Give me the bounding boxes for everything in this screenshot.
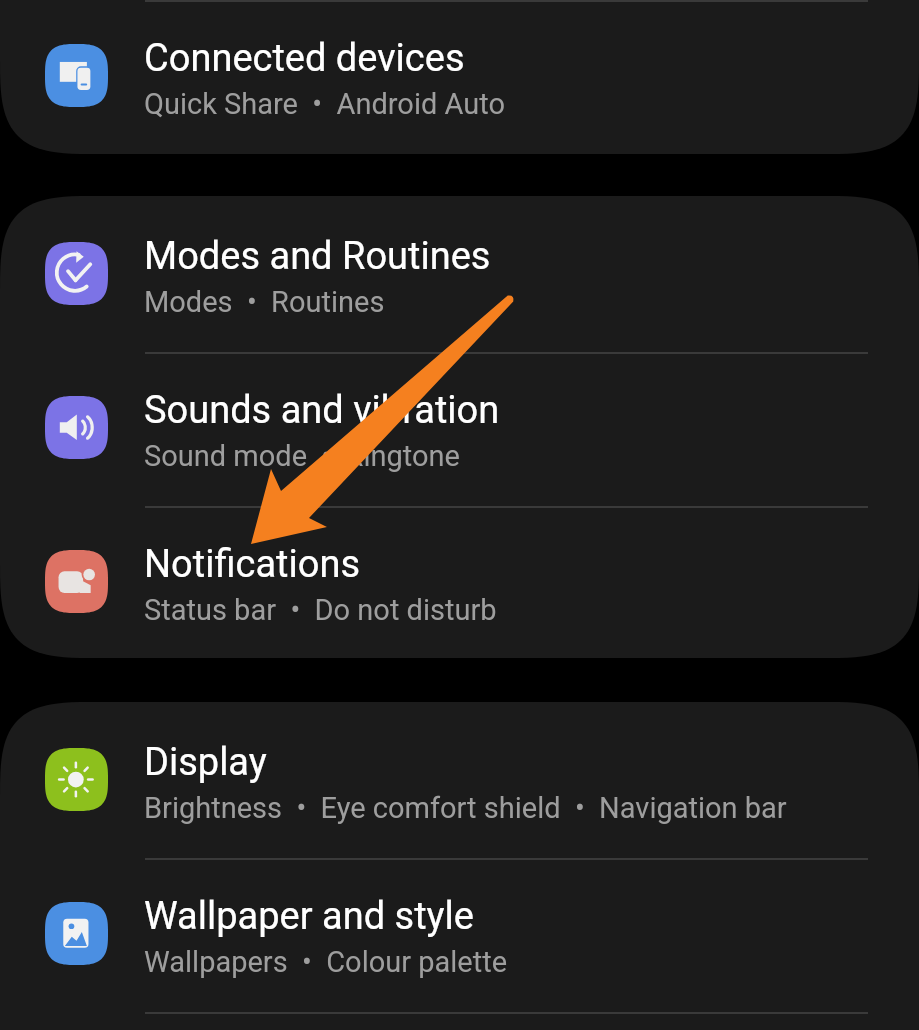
button[interactable]: Sounds and vibration xyxy=(0,350,919,504)
staticText: Connected devices xyxy=(144,36,465,81)
other: Annotation arrow pointing at Notificatio… xyxy=(0,0,919,1030)
staticText: Sounds and vibration xyxy=(144,388,500,433)
staticText: Brightness • Eye comfort shield • Naviga… xyxy=(144,791,787,825)
staticText: Wallpapers • Colour palette xyxy=(144,945,508,979)
button[interactable]: Display xyxy=(0,702,919,856)
staticText: Modes and Routines xyxy=(144,234,491,279)
button[interactable]: Modes and Routines xyxy=(0,196,919,350)
button[interactable]: Notifications xyxy=(0,504,919,658)
staticText: Notifications xyxy=(144,542,361,587)
staticText: Wallpaper and style xyxy=(144,894,474,939)
button[interactable]: Wallpaper and style xyxy=(0,856,919,1010)
staticText: Modes • Routines xyxy=(144,285,385,319)
staticText: Display xyxy=(144,740,267,785)
staticText: Sound mode • Ringtone xyxy=(144,439,460,473)
staticText: Quick Share • Android Auto xyxy=(144,87,505,121)
staticText: Status bar • Do not disturb xyxy=(144,593,497,627)
button[interactable]: Connected devices xyxy=(0,0,919,152)
